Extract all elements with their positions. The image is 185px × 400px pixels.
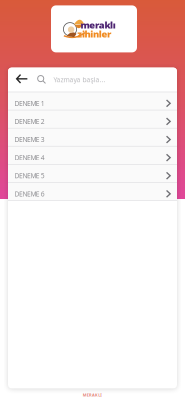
staticText: DENEME 2	[15, 117, 45, 126]
staticText: DENEME 5	[15, 171, 45, 180]
staticText: DENEME 1	[15, 99, 45, 108]
button[interactable]: Back	[8, 68, 36, 92]
staticText: zihinler	[77, 28, 111, 40]
button[interactable]: DENEME 4	[8, 146, 177, 164]
button[interactable]: DENEME 2	[8, 110, 177, 128]
button[interactable]: DENEME 6	[8, 182, 177, 200]
button[interactable]: DENEME 3	[8, 128, 177, 146]
staticText: meraklı	[81, 19, 116, 31]
button[interactable]: DENEME 5	[8, 164, 177, 182]
staticText: DENEME 6	[15, 189, 45, 198]
staticText: Yazmaya başla...	[53, 75, 105, 84]
staticText: DENEME 4	[15, 153, 45, 162]
staticText: DENEME 3	[15, 135, 45, 144]
staticText: MERAKLI	[83, 392, 102, 398]
button[interactable]: DENEME 1	[8, 92, 177, 110]
